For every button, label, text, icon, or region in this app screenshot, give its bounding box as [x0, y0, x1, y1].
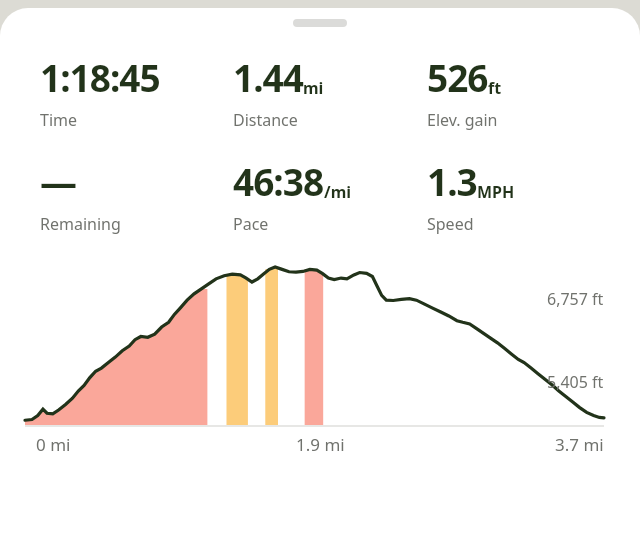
- button[interactable]: 46:38: [233, 156, 427, 235]
- button[interactable]: —: [40, 156, 233, 235]
- staticText: /mi: [324, 181, 352, 203]
- staticText: Distance: [233, 109, 298, 131]
- button[interactable]: 6,757 ft: [0, 249, 640, 459]
- staticText: Elev. gain: [427, 109, 498, 131]
- staticText: 526: [427, 52, 488, 102]
- staticText: 0 mi: [36, 433, 71, 456]
- staticText: 1.3: [427, 156, 477, 206]
- staticText: 1:18:45: [40, 52, 160, 102]
- staticText: mi: [303, 77, 324, 99]
- staticText: Time: [40, 109, 78, 131]
- other: Drag handle: [293, 19, 347, 27]
- staticText: 46:38: [233, 156, 324, 206]
- button[interactable]: 1.3: [427, 156, 515, 235]
- staticText: Pace: [233, 213, 269, 235]
- staticText: 1.44: [233, 52, 303, 102]
- staticText: —: [40, 156, 76, 206]
- button[interactable]: 526: [427, 52, 502, 131]
- staticText: MPH: [477, 181, 515, 203]
- button[interactable]: 1:18:45: [40, 52, 233, 131]
- staticText: ft: [488, 77, 502, 99]
- button[interactable]: 1.44: [233, 52, 427, 131]
- staticText: Remaining: [40, 213, 121, 235]
- staticText: 6,757 ft: [547, 288, 604, 310]
- staticText: 5,405 ft: [547, 371, 604, 393]
- staticText: 3.7 mi: [555, 433, 604, 456]
- staticText: Speed: [427, 213, 474, 235]
- staticText: 1.9 mi: [296, 433, 345, 456]
